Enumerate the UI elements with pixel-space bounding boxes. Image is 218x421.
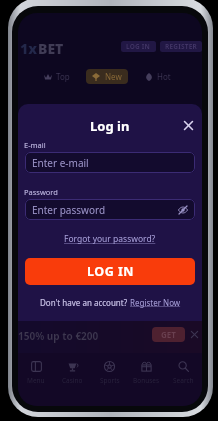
staticText: New xyxy=(105,71,122,82)
staticText: GET xyxy=(161,329,176,340)
staticText: LOG IN xyxy=(126,42,151,51)
button[interactable]: LOG IN xyxy=(121,41,156,52)
staticText: Hot xyxy=(157,71,171,82)
button[interactable]: REGISTER xyxy=(160,41,202,52)
staticText: Don't have an account? xyxy=(40,297,130,308)
button[interactable]: Register Now xyxy=(130,297,181,308)
button[interactable]: Bonuses xyxy=(128,361,165,385)
staticText: Bonuses xyxy=(133,376,160,385)
staticText: Search xyxy=(173,376,194,385)
button[interactable]: Close xyxy=(184,121,193,130)
staticText: 1x xyxy=(20,39,38,54)
staticText: Log in xyxy=(90,117,130,135)
staticText: 150% up to €200 xyxy=(18,329,99,343)
button[interactable]: Forgot your password? xyxy=(64,233,156,245)
button[interactable]: Enter password xyxy=(25,199,195,220)
button[interactable]: Dismiss promo xyxy=(190,330,199,339)
staticText: Enter e-mail xyxy=(32,156,89,170)
staticText: Casino xyxy=(62,376,83,385)
button[interactable]: Enter e-mail xyxy=(25,152,195,173)
button[interactable]: LOG IN xyxy=(25,258,195,285)
staticText: Top xyxy=(56,71,70,82)
button[interactable]: Sports xyxy=(91,361,128,385)
staticText: Sports xyxy=(100,376,120,385)
staticText: LOG IN xyxy=(87,263,134,280)
button[interactable]: Casino xyxy=(54,361,91,385)
button[interactable]: Search xyxy=(165,361,202,385)
button[interactable]: Menu xyxy=(18,361,54,385)
staticText: Menu xyxy=(27,376,45,385)
staticText: REGISTER xyxy=(165,42,197,51)
button[interactable]: GET xyxy=(152,327,185,342)
staticText: BET xyxy=(38,39,64,54)
button[interactable]: New xyxy=(86,69,128,84)
staticText: E-mail xyxy=(24,140,46,150)
staticText: Password xyxy=(24,187,58,197)
staticText: Enter password xyxy=(32,203,106,217)
button[interactable]: Show password xyxy=(178,205,188,215)
